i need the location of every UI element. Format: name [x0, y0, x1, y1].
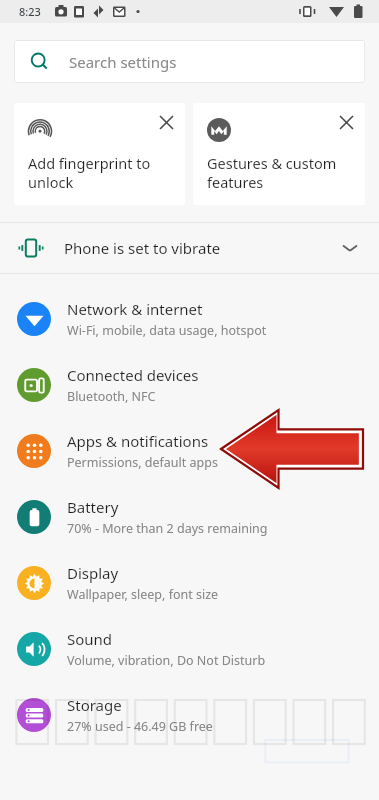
- button[interactable]: Battery: [0, 484, 379, 550]
- button[interactable]: Search settings: [14, 40, 365, 83]
- staticText: Search settings: [69, 52, 177, 72]
- button[interactable]: Storage: [0, 682, 379, 748]
- button[interactable]: Dismiss: [153, 109, 179, 135]
- staticText: Bluetooth, NFC: [67, 388, 156, 405]
- button[interactable]: Dismiss: [193, 103, 365, 205]
- staticText: 8:23: [19, 4, 41, 19]
- staticText: Wi-Fi, mobile, data usage, hotspot: [67, 322, 267, 339]
- button[interactable]: Phone is set to vibrate: [0, 223, 379, 273]
- button[interactable]: Connected devices: [0, 352, 379, 418]
- button[interactable]: Dismiss: [333, 109, 359, 135]
- staticText: Phone is set to vibrate: [64, 238, 343, 258]
- staticText: Permissions, default apps: [67, 454, 218, 471]
- staticText: Wallpaper, sleep, font size: [67, 586, 219, 603]
- staticText: Connected devices: [67, 365, 199, 385]
- staticText: 27% used - 46.49 GB free: [67, 718, 213, 735]
- staticText: Add fingerprint to unlock: [28, 153, 151, 192]
- staticText: Gestures & custom features: [207, 153, 337, 192]
- button[interactable]: Sound: [0, 616, 379, 682]
- button[interactable]: Network & internet: [0, 286, 379, 352]
- staticText: Storage: [67, 695, 122, 715]
- staticText: Display: [67, 563, 119, 583]
- button[interactable]: Dismiss: [14, 103, 185, 205]
- button[interactable]: Display: [0, 550, 379, 616]
- staticText: Apps & notifications: [67, 431, 209, 451]
- staticText: Sound: [67, 629, 113, 649]
- staticText: Battery: [67, 497, 119, 517]
- button[interactable]: Apps & notifications: [0, 418, 379, 484]
- staticText: Volume, vibration, Do Not Disturb: [67, 652, 266, 669]
- staticText: Network & internet: [67, 299, 203, 319]
- staticText: 70% - More than 2 days remaining: [67, 520, 268, 537]
